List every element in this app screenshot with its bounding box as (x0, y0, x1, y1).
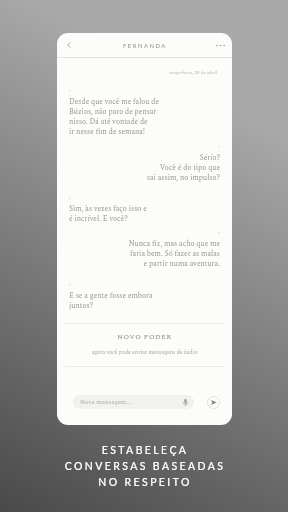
staticText: ESTABELEÇA CONVERSAS BASEADAS NO RESPEIT… (1, 444, 288, 488)
staticText: ’ (69, 88, 71, 98)
staticText: terça-feira, 20 de abril (169, 69, 218, 77)
staticText: Sério? Você é do tipo que sai assim, no … (69, 152, 220, 184)
staticText: NOVO PODER (57, 332, 232, 343)
button[interactable]: More options (212, 37, 228, 53)
staticText: Nunca fiz, mas acho que me faria bem. Só… (69, 238, 220, 270)
staticText: FERNANDA (123, 42, 167, 49)
button[interactable]: Send (207, 396, 220, 409)
staticText: ’ (218, 230, 220, 240)
staticText: Sim, às vezes faço isso e é incrível. E … (69, 203, 220, 225)
button[interactable]: Voice message (181, 398, 190, 407)
staticText: Desde que você me falou de Búzios, não p… (69, 96, 220, 138)
button[interactable]: Back (61, 37, 77, 53)
staticText: ’ (69, 282, 71, 292)
staticText: ’ (69, 196, 71, 206)
staticText: E se a gente fosse embora juntos? (69, 290, 220, 312)
button[interactable]: Nova mensagem... (73, 395, 194, 409)
staticText: ’ (218, 144, 220, 154)
staticText: agora você pode enviar mensagens de áudi… (57, 348, 232, 356)
staticText: Nova mensagem... (80, 397, 132, 407)
